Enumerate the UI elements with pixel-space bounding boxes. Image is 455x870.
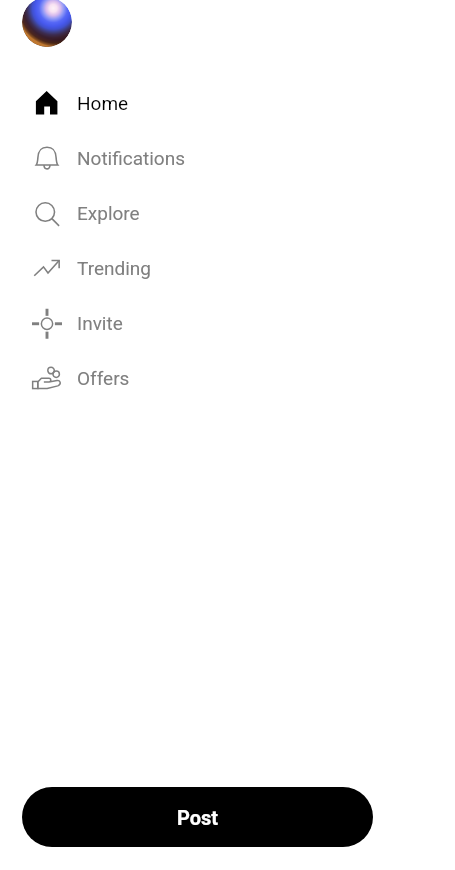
button[interactable]: Invite xyxy=(0,295,455,350)
button[interactable]: Post xyxy=(22,787,373,847)
staticText: Trending xyxy=(77,257,151,279)
staticText: Explore xyxy=(77,202,140,224)
staticText: Offers xyxy=(77,367,130,389)
button[interactable]: Profile xyxy=(22,0,72,47)
staticText: Invite xyxy=(77,312,123,334)
staticText: Home xyxy=(77,92,129,114)
staticText: Notifications xyxy=(77,147,186,169)
staticText: Post xyxy=(177,806,219,829)
button[interactable]: Trending xyxy=(0,240,455,295)
button[interactable]: Home xyxy=(0,75,455,130)
button[interactable]: Notifications xyxy=(0,130,455,185)
button[interactable]: Explore xyxy=(0,185,455,240)
button[interactable]: Offers xyxy=(0,350,455,405)
